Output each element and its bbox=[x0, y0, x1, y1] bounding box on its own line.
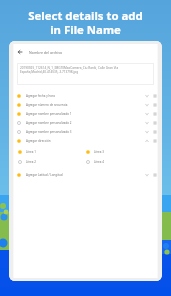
staticText: Select details to add in File Name bbox=[28, 8, 143, 37]
button[interactable]: Agregar número de secuencia bbox=[9, 100, 162, 109]
other: Reorder bbox=[153, 112, 157, 116]
staticText: Línea 2 bbox=[26, 160, 36, 164]
button[interactable]: Línea 2 bbox=[9, 157, 77, 167]
staticText: Línea 4 bbox=[94, 160, 104, 164]
staticText: Agregar número de secuencia bbox=[26, 103, 68, 107]
staticText: España,Madrid,40.414535,-3.713798.jpg bbox=[20, 70, 79, 74]
staticText: Agregar Latitud / Longitud bbox=[26, 173, 63, 177]
other: Reorder bbox=[153, 121, 157, 125]
button[interactable]: Back bbox=[16, 48, 24, 56]
button[interactable]: Agregar nombre personalizado 1 bbox=[9, 109, 162, 118]
other: Reorder bbox=[153, 130, 157, 134]
button[interactable]: Agregar Latitud / Longitud bbox=[9, 170, 162, 179]
staticText: Nombre del archivo bbox=[29, 50, 63, 55]
button[interactable]: Línea 3 bbox=[77, 147, 162, 157]
button[interactable]: 20190925_112614_N_1_IMG70MaxCamera_Ciu R… bbox=[17, 63, 154, 85]
staticText: Agregar nombre personalizado 1 bbox=[26, 112, 72, 116]
staticText: Línea 1 bbox=[26, 150, 36, 154]
staticText: Agregar nombre personalizado 2 bbox=[26, 121, 72, 125]
button[interactable]: Agregar fecha y hora bbox=[9, 91, 162, 100]
other: Reorder bbox=[153, 94, 157, 98]
button[interactable]: Agregar nombre personalizado 2 bbox=[9, 118, 162, 127]
button[interactable]: Línea 4 bbox=[77, 157, 162, 167]
staticText: Agregar fecha y hora bbox=[26, 94, 55, 98]
other: Reorder bbox=[153, 103, 157, 107]
staticText: Línea 3 bbox=[94, 150, 104, 154]
staticText: Agregar nombre personalizado 3 bbox=[26, 130, 72, 134]
other: Reorder bbox=[153, 173, 157, 177]
button[interactable]: Agregar dirección bbox=[9, 136, 162, 145]
button[interactable]: Back bbox=[9, 46, 162, 58]
staticText: Agregar dirección bbox=[26, 139, 51, 143]
button[interactable]: Línea 1 bbox=[9, 147, 77, 157]
staticText: 20190925_112614_N_1_IMG70MaxCamera_Ciu R… bbox=[20, 66, 119, 70]
other: Reorder bbox=[153, 139, 157, 143]
button[interactable]: Agregar nombre personalizado 3 bbox=[9, 127, 162, 136]
